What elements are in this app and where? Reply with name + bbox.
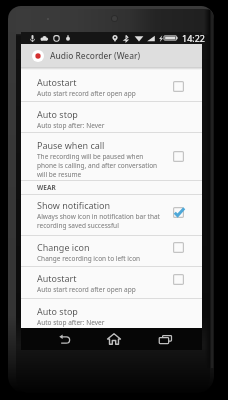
button[interactable]: Autostart [21, 67, 202, 101]
staticText: Show notification [37, 199, 111, 211]
staticText: The recording will be paused when [37, 152, 144, 161]
staticText: Autostart [37, 76, 77, 88]
button[interactable]: Auto stop [21, 102, 202, 132]
staticText: phone is calling, and after conversation [37, 161, 158, 170]
staticText: Change recording icon to left icon [37, 254, 141, 263]
button[interactable]: Home [98, 328, 130, 350]
staticText: Auto start record after open app [37, 89, 136, 98]
staticText: Change icon [37, 241, 90, 253]
staticText: recording saved successful [37, 221, 119, 230]
button[interactable]: Audio Recorder (Wear) [21, 44, 202, 67]
button[interactable]: Auto stop [21, 299, 202, 330]
staticText: WEAR [37, 183, 56, 192]
button[interactable]: Back [49, 328, 81, 350]
button[interactable]: Change icon [21, 236, 202, 266]
staticText: Auto stop [37, 108, 78, 120]
button[interactable]: Pause when call [21, 133, 202, 180]
button[interactable]: Recent apps [149, 328, 181, 350]
staticText: Auto stop [37, 305, 78, 317]
staticText: Auto stop after: Never [37, 318, 105, 327]
staticText: will be resume [37, 170, 82, 179]
staticText: Pause when call [37, 139, 105, 151]
staticText: 14:22 [182, 32, 206, 44]
button[interactable]: Autostart [21, 267, 202, 298]
staticText: Audio Recorder (Wear) [50, 50, 141, 61]
staticText: Auto stop after: Never [37, 121, 105, 130]
staticText: Auto start record after open app [37, 285, 136, 294]
staticText: Always show icon in notification bar tha… [37, 212, 160, 221]
staticText: Autostart [37, 272, 77, 284]
button[interactable]: Show notification [21, 195, 202, 235]
